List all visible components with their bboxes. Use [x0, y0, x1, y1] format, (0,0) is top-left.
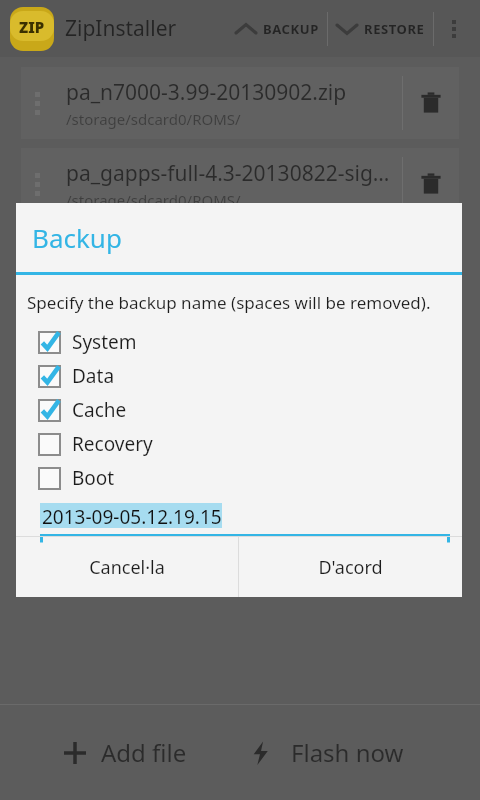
button[interactable]: Flash now — [240, 705, 480, 800]
staticText: ZipInstaller — [65, 14, 177, 43]
button[interactable]: RESTORE — [328, 0, 433, 57]
button[interactable]: Add file — [0, 705, 240, 800]
staticText: 2013-09-05.12.19.15 — [42, 504, 222, 530]
staticText: Boot — [72, 465, 115, 491]
staticText: Recovery — [72, 431, 153, 457]
staticText: Cancel·la — [89, 555, 165, 580]
button[interactable]: Delete — [403, 148, 459, 220]
staticText: Cache — [72, 397, 127, 423]
button[interactable]: D'acord — [239, 537, 462, 597]
staticText: Flash now — [291, 736, 404, 769]
staticText: Backup — [32, 220, 122, 255]
staticText: /storage/sdcard0/ROMS/ — [66, 109, 241, 129]
button[interactable]: Data — [16, 359, 462, 393]
staticText: Specify the backup name (spaces will be … — [27, 291, 431, 314]
staticText: System — [72, 329, 137, 355]
button[interactable]: Recovery — [16, 427, 462, 461]
button[interactable]: pa_n7000-3.99-20130902.zip — [21, 67, 459, 139]
button[interactable]: Delete — [403, 67, 459, 139]
button[interactable]: Boot — [16, 461, 462, 495]
button[interactable]: BACKUP — [227, 0, 327, 57]
staticText: Data — [72, 363, 115, 389]
staticText: BACKUP — [263, 20, 319, 38]
staticText: Add file — [101, 736, 187, 769]
button[interactable]: System — [16, 325, 462, 359]
staticText: RESTORE — [364, 20, 425, 38]
staticText: D'acord — [318, 555, 383, 580]
button[interactable]: 2013-09-05.12.19.15 — [40, 503, 450, 536]
button[interactable]: pa_gapps-full-4.3-20130822-signed… — [21, 148, 459, 220]
staticText: pa_gapps-full-4.3-20130822-signed… — [66, 159, 402, 188]
button[interactable]: Cache — [16, 393, 462, 427]
staticText: pa_n7000-3.99-20130902.zip — [66, 78, 347, 107]
staticText: ZIP — [19, 17, 45, 37]
button[interactable]: Cancel·la — [16, 537, 238, 597]
staticText: /storage/sdcard0/ROMS/ — [66, 190, 241, 210]
button[interactable]: More options — [434, 0, 474, 57]
